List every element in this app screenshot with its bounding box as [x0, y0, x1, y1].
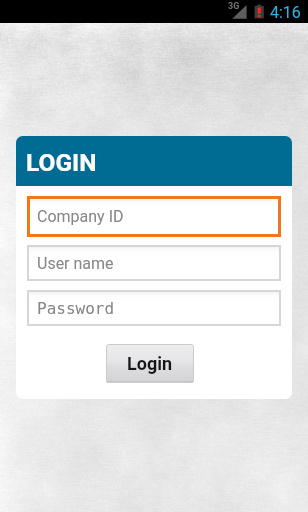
staticText: Password	[37, 299, 115, 318]
staticText: LOGIN	[26, 148, 97, 177]
staticText: 4:16	[270, 3, 301, 22]
staticText: 3G	[228, 1, 240, 12]
button[interactable]: User name	[27, 245, 281, 281]
button[interactable]: Login	[106, 344, 194, 383]
staticText: User name	[37, 254, 114, 273]
staticText: Login	[127, 353, 173, 374]
staticText: Company ID	[37, 207, 124, 226]
button[interactable]: Password	[27, 290, 281, 326]
button[interactable]: Company ID	[27, 196, 281, 237]
